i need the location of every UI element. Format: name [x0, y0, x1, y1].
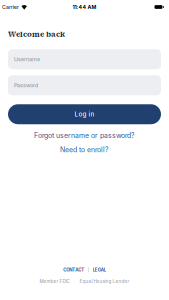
button[interactable]: CONTACT — [63, 267, 84, 272]
staticText: Member FDIC — [39, 278, 69, 284]
button[interactable]: Need to enroll? — [60, 145, 109, 154]
staticText: Username — [14, 56, 40, 62]
button[interactable]: Log in — [8, 104, 161, 124]
button[interactable]: Forgot username or password? — [34, 131, 135, 139]
button[interactable]: Username — [8, 49, 161, 69]
staticText: Password — [14, 82, 38, 88]
staticText: 11:44 AM — [72, 4, 96, 10]
staticText: LEGAL — [93, 267, 106, 272]
staticText: Forgot username or password? — [34, 131, 135, 139]
staticText: Equal Housing Lender — [79, 278, 129, 284]
staticText: CONTACT — [63, 267, 84, 272]
staticText: Log in — [74, 110, 94, 118]
button[interactable]: Password — [8, 75, 161, 95]
button[interactable]: LEGAL — [93, 267, 106, 272]
staticText: Carrier — [2, 4, 19, 10]
staticText: Welcome back — [8, 29, 65, 39]
staticText: Need to enroll? — [60, 145, 109, 154]
